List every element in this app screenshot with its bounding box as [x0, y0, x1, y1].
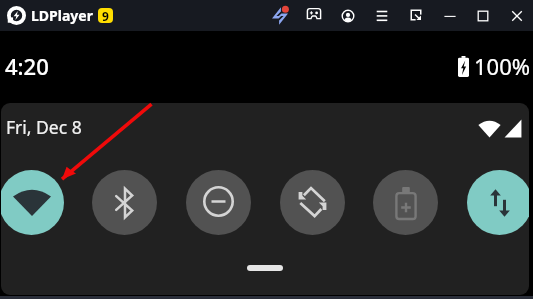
button[interactable]: Bluetooth	[92, 170, 157, 235]
button[interactable]: Auto rotate	[280, 170, 345, 235]
staticText: 4:20	[5, 51, 49, 81]
staticText: LDPlayer	[31, 6, 93, 25]
button[interactable]: Menu	[365, 0, 399, 31]
button[interactable]: Do Not Disturb	[186, 170, 251, 235]
button[interactable]: Accelerate	[263, 0, 297, 31]
button[interactable]: Battery Saver	[373, 170, 438, 235]
staticText: 100%	[474, 51, 531, 81]
button[interactable]: Mobile data	[467, 170, 529, 235]
button[interactable]: Resize window	[399, 0, 433, 31]
button[interactable]: Maximize	[466, 0, 500, 31]
button[interactable]: Minimize	[433, 0, 466, 31]
button[interactable]: Close	[500, 0, 533, 31]
staticText: Fri, Dec 8	[6, 115, 82, 139]
staticText: 9	[102, 8, 109, 23]
button[interactable]: Account	[331, 0, 365, 31]
button[interactable]: Games	[297, 0, 331, 31]
button[interactable]: Wi-Fi	[1, 170, 64, 235]
